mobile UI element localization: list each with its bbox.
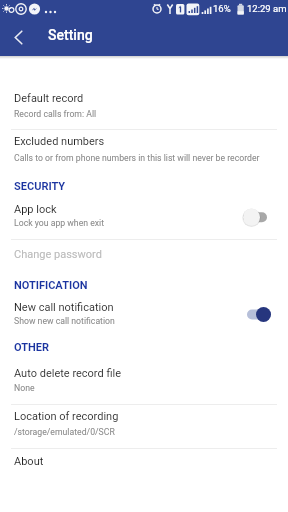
- button[interactable]: [0, 76, 288, 128]
- button[interactable]: [0, 404, 288, 448]
- staticText: Location of recording: [14, 410, 119, 423]
- button[interactable]: [4, 25, 32, 53]
- staticText: OTHER: [14, 341, 49, 354]
- button[interactable]: [0, 239, 288, 272]
- staticText: Change password: [14, 248, 102, 261]
- staticText: Excluded numbers: [14, 135, 105, 148]
- button[interactable]: [0, 128, 288, 172]
- staticText: Default record: [14, 92, 84, 105]
- button[interactable]: [0, 294, 288, 338]
- staticText: Calls to or from phone numbers in this l…: [14, 153, 260, 163]
- staticText: NOTIFICATION: [14, 279, 88, 292]
- button[interactable]: [0, 196, 288, 239]
- staticText: None: [14, 383, 35, 393]
- staticText: 16%: [213, 3, 231, 14]
- staticText: Show new call notification: [14, 316, 115, 326]
- button[interactable]: [0, 358, 288, 404]
- staticText: 12:29 am: [247, 3, 287, 14]
- staticText: Record calls from: All: [14, 109, 97, 119]
- staticText: New call notification: [14, 301, 114, 314]
- button[interactable]: [0, 448, 288, 482]
- staticText: /storage/emulated/0/SCR: [14, 427, 115, 437]
- staticText: Auto delete record file: [14, 367, 122, 380]
- staticText: Setting: [48, 27, 93, 43]
- staticText: Lock you app when exit: [14, 218, 105, 228]
- staticText: SECURITY: [14, 180, 66, 193]
- staticText: About: [14, 455, 44, 468]
- staticText: App lock: [14, 203, 57, 216]
